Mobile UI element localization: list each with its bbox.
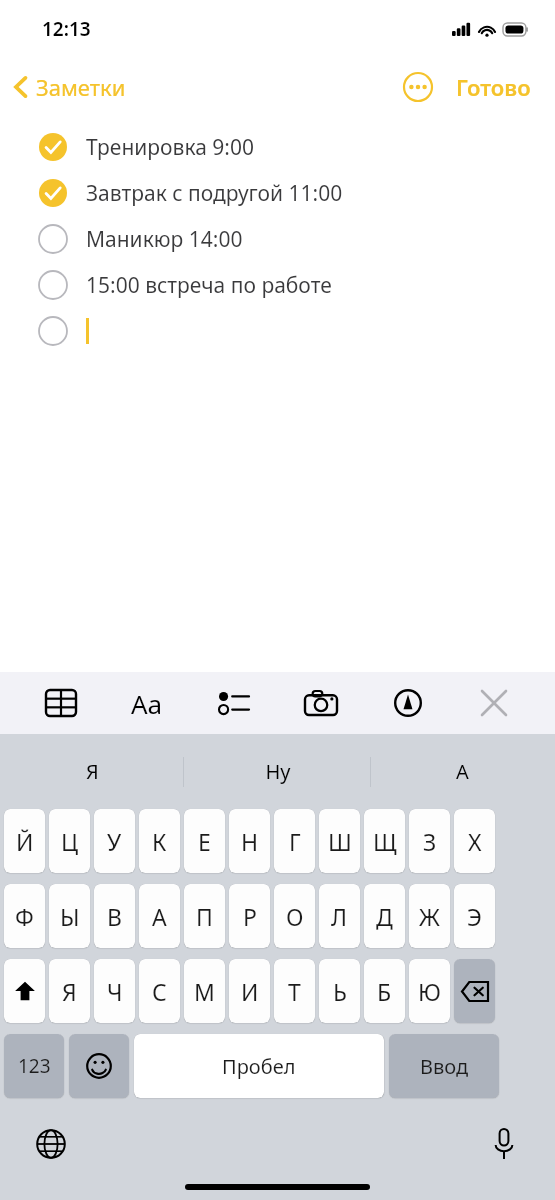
button[interactable]: Пробел bbox=[134, 1034, 384, 1098]
staticText: Заметки bbox=[36, 72, 126, 102]
staticText: А bbox=[456, 758, 469, 785]
button[interactable]: Ц bbox=[49, 809, 90, 873]
staticText: Ж bbox=[419, 901, 440, 932]
staticText: Д bbox=[376, 901, 393, 932]
button[interactable]: И bbox=[229, 959, 270, 1023]
button[interactable]: Р bbox=[229, 884, 270, 948]
button[interactable]: Щ bbox=[364, 809, 405, 873]
staticText: Ф bbox=[15, 901, 34, 932]
staticText: Ввод bbox=[420, 1053, 469, 1080]
button[interactable]: В bbox=[94, 884, 135, 948]
staticText: Й bbox=[16, 826, 34, 857]
button[interactable]: Checklist bbox=[208, 677, 260, 729]
button[interactable]: More options bbox=[398, 67, 438, 107]
button[interactable]: 15:00 встреча по работе bbox=[0, 262, 555, 308]
button[interactable]: Ну bbox=[185, 734, 370, 809]
staticText: Р bbox=[243, 901, 257, 932]
staticText: З bbox=[423, 826, 437, 857]
staticText: И bbox=[241, 976, 259, 1007]
button[interactable]: Ю bbox=[409, 959, 450, 1023]
button[interactable]: Я bbox=[0, 734, 185, 809]
staticText: Ы bbox=[60, 901, 80, 932]
button[interactable]: У bbox=[94, 809, 135, 873]
button[interactable]: Change keyboard bbox=[28, 1121, 74, 1167]
staticText: Ну bbox=[265, 758, 291, 785]
staticText: Я bbox=[86, 758, 99, 785]
staticText: Ш bbox=[328, 826, 352, 857]
staticText: О bbox=[286, 901, 304, 932]
staticText: Пробел bbox=[222, 1053, 296, 1080]
button[interactable]: П bbox=[184, 884, 225, 948]
button[interactable]: Table bbox=[35, 677, 87, 729]
button[interactable]: Готово bbox=[452, 66, 535, 108]
button[interactable]: Н bbox=[229, 809, 270, 873]
button[interactable]: А bbox=[370, 734, 555, 809]
button[interactable]: Е bbox=[184, 809, 225, 873]
button[interactable]: Тренировка 9:00 bbox=[0, 124, 555, 170]
button[interactable]: Backspace bbox=[454, 959, 495, 1023]
button[interactable]: Я bbox=[49, 959, 90, 1023]
staticText: Тренировка 9:00 bbox=[86, 133, 254, 162]
button[interactable]: Emoji bbox=[69, 1034, 129, 1098]
staticText: Ч bbox=[107, 976, 123, 1007]
staticText: Готово bbox=[456, 72, 531, 102]
button[interactable]: Т bbox=[274, 959, 315, 1023]
button[interactable]: Dictate bbox=[481, 1121, 527, 1167]
staticText: Маникюр 14:00 bbox=[86, 225, 243, 254]
staticText: К bbox=[152, 826, 167, 857]
staticText: В bbox=[107, 901, 122, 932]
button[interactable]: Ь bbox=[319, 959, 360, 1023]
button[interactable]: 123 bbox=[4, 1034, 64, 1098]
button[interactable] bbox=[0, 308, 555, 354]
button[interactable]: Э bbox=[454, 884, 495, 948]
staticText: Б bbox=[377, 976, 392, 1007]
button[interactable]: Ч bbox=[94, 959, 135, 1023]
staticText: Х bbox=[468, 826, 482, 857]
button[interactable]: Ф bbox=[4, 884, 45, 948]
button[interactable]: Х bbox=[454, 809, 495, 873]
staticText: А bbox=[152, 901, 167, 932]
button[interactable]: Д bbox=[364, 884, 405, 948]
button[interactable]: Ж bbox=[409, 884, 450, 948]
button[interactable]: Б bbox=[364, 959, 405, 1023]
button[interactable]: О bbox=[274, 884, 315, 948]
staticText: Я bbox=[62, 976, 77, 1007]
staticText: Ю bbox=[418, 976, 441, 1007]
button[interactable]: Завтрак с подругой 11:00 bbox=[0, 170, 555, 216]
staticText: Е bbox=[198, 826, 211, 857]
button[interactable]: Shift bbox=[4, 959, 45, 1023]
button[interactable]: Заметки bbox=[0, 66, 136, 108]
button[interactable]: Г bbox=[274, 809, 315, 873]
staticText: Э bbox=[467, 901, 482, 932]
staticText: Ь bbox=[333, 976, 347, 1007]
button[interactable]: А bbox=[139, 884, 180, 948]
button[interactable]: С bbox=[139, 959, 180, 1023]
staticText: Н bbox=[241, 826, 259, 857]
staticText: П bbox=[196, 901, 213, 932]
staticText: 15:00 встреча по работе bbox=[86, 271, 332, 300]
button[interactable]: М bbox=[184, 959, 225, 1023]
staticText: Щ bbox=[373, 826, 397, 857]
button[interactable]: З bbox=[409, 809, 450, 873]
button[interactable]: Ы bbox=[49, 884, 90, 948]
staticText: Aa bbox=[131, 686, 163, 721]
button[interactable]: Ш bbox=[319, 809, 360, 873]
staticText: 12:13 bbox=[42, 16, 91, 42]
staticText: Завтрак с подругой 11:00 bbox=[86, 179, 343, 208]
staticText: 123 bbox=[18, 1053, 51, 1079]
staticText: Ц bbox=[61, 826, 79, 857]
button[interactable]: Ввод bbox=[389, 1034, 499, 1098]
button[interactable]: Й bbox=[4, 809, 45, 873]
staticText: М bbox=[194, 976, 215, 1007]
staticText: Г bbox=[289, 826, 301, 857]
button[interactable]: Маникюр 14:00 bbox=[0, 216, 555, 262]
button[interactable]: Camera bbox=[295, 677, 347, 729]
button[interactable]: Close keyboard bbox=[468, 677, 520, 729]
staticText: Т bbox=[288, 976, 301, 1007]
button[interactable]: К bbox=[139, 809, 180, 873]
staticText: Л bbox=[331, 901, 348, 932]
staticText: У bbox=[107, 826, 122, 857]
button[interactable]: Л bbox=[319, 884, 360, 948]
button[interactable]: Aa bbox=[121, 677, 173, 729]
button[interactable]: Markup bbox=[382, 677, 434, 729]
